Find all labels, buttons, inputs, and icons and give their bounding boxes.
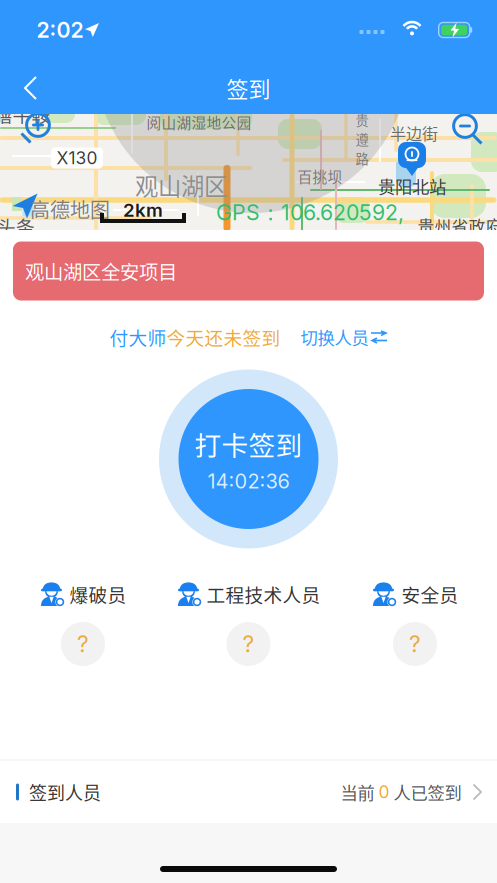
staticText: 2km bbox=[123, 199, 163, 221]
staticText: 膳牛鞍 bbox=[0, 100, 50, 127]
staticText: 工程技术人员 bbox=[206, 580, 320, 607]
staticText: 人已签到 bbox=[389, 779, 461, 805]
staticText: 签到人员 bbox=[29, 779, 101, 805]
button[interactable]: 打卡签到 bbox=[159, 369, 338, 548]
button[interactable]: 爆破员未知 bbox=[61, 622, 105, 666]
staticText: 打卡签到 bbox=[194, 425, 302, 463]
staticText: ? bbox=[77, 630, 89, 658]
staticText: ? bbox=[242, 630, 254, 658]
staticText: 当前 bbox=[340, 779, 378, 805]
staticText: X130 bbox=[56, 147, 97, 168]
staticText: 付大师 bbox=[109, 323, 166, 350]
staticText: 头条 bbox=[0, 212, 35, 239]
button[interactable]: 安全员未知 bbox=[393, 622, 437, 666]
staticText: 观山湖区 bbox=[135, 168, 227, 202]
staticText: 2:02 bbox=[36, 17, 83, 43]
button[interactable]: 工程技术人员未知 bbox=[226, 622, 270, 666]
staticText: 切换人员 bbox=[300, 324, 368, 350]
staticText: 半边街 bbox=[390, 121, 438, 145]
staticText: 贵州省政府 bbox=[417, 214, 497, 238]
staticText: 0 bbox=[378, 781, 389, 802]
staticText: GPS：106.620592, bbox=[216, 199, 404, 226]
staticText: 贵 遵 路 bbox=[355, 110, 368, 168]
staticText: 百挑坝 bbox=[297, 165, 342, 187]
staticText: 高德地图 bbox=[30, 194, 110, 223]
staticText: 观山湖区全安项目 bbox=[25, 257, 177, 285]
staticText: 14:02:36 bbox=[207, 469, 289, 493]
staticText: 今天还未签到 bbox=[166, 323, 280, 350]
staticText: 贵阳北站 bbox=[378, 173, 446, 199]
staticText: 阅山湖湿地公园 bbox=[146, 111, 251, 133]
button[interactable]: 当前 bbox=[340, 779, 481, 805]
button[interactable]: 切换人员 bbox=[280, 324, 387, 350]
staticText: 安全员 bbox=[401, 580, 458, 607]
staticText: 签到 bbox=[226, 72, 270, 104]
button[interactable]: 返回 bbox=[8, 65, 54, 111]
staticText: ? bbox=[409, 630, 421, 658]
staticText: 爆破员 bbox=[69, 580, 126, 607]
